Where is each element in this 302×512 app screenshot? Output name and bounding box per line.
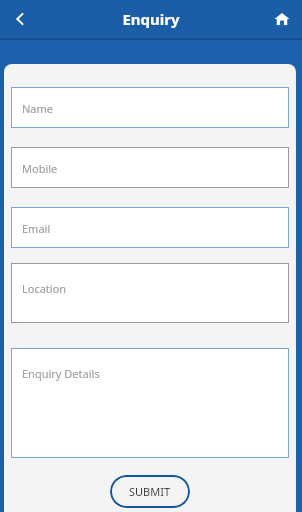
button[interactable]: Home (262, 0, 302, 38)
staticText: Enquiry (122, 9, 180, 29)
button[interactable]: Enquiry Details (11, 348, 289, 458)
staticText: Name (22, 101, 54, 116)
staticText: Enquiry Details (22, 366, 100, 381)
button[interactable]: Back (0, 0, 40, 38)
staticText: SUBMIT (129, 484, 171, 499)
button[interactable]: Mobile (11, 147, 289, 188)
staticText: Email (22, 221, 51, 236)
button[interactable]: Location (11, 263, 289, 323)
button[interactable]: Name (11, 87, 289, 128)
button[interactable]: Email (11, 207, 289, 248)
staticText: Location (22, 281, 67, 296)
staticText: Mobile (22, 161, 58, 176)
button[interactable]: SUBMIT (110, 475, 190, 508)
